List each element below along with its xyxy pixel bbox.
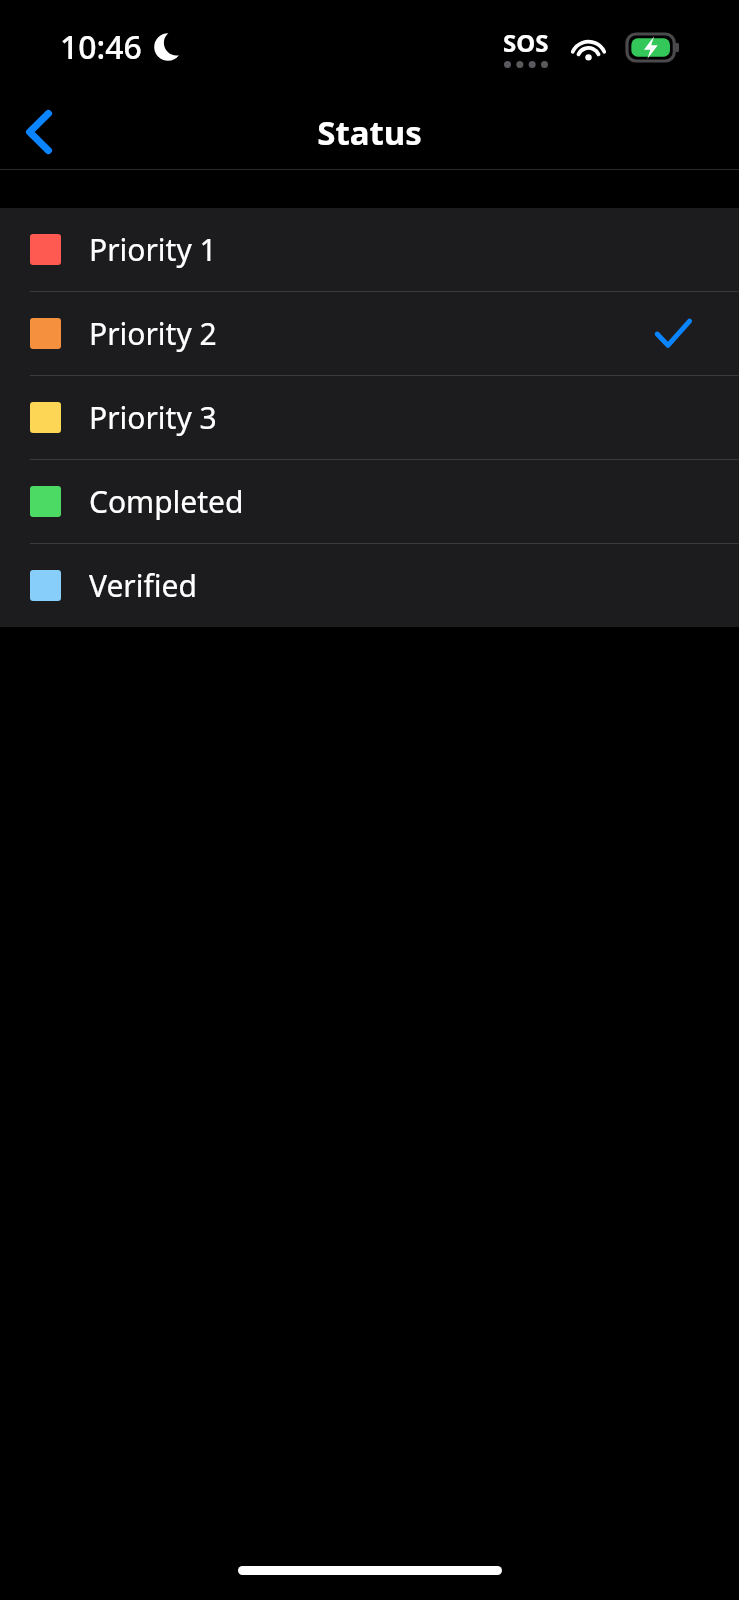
staticText: 10:46 <box>60 25 142 69</box>
button[interactable]: Completed <box>0 460 739 543</box>
staticText: Priority 3 <box>89 397 691 438</box>
button[interactable]: Verified <box>0 544 739 627</box>
staticText: Priority 2 <box>89 313 655 354</box>
staticText: Status <box>317 110 422 155</box>
staticText: Completed <box>89 481 691 522</box>
button[interactable]: Back <box>0 94 78 170</box>
button[interactable]: Priority 1 <box>0 208 739 291</box>
button[interactable]: Priority 3 <box>0 376 739 459</box>
staticText: Verified <box>89 565 691 606</box>
staticText: Priority 1 <box>89 229 691 270</box>
button[interactable]: Priority 2 <box>0 292 739 375</box>
staticText: SOS <box>503 26 549 59</box>
